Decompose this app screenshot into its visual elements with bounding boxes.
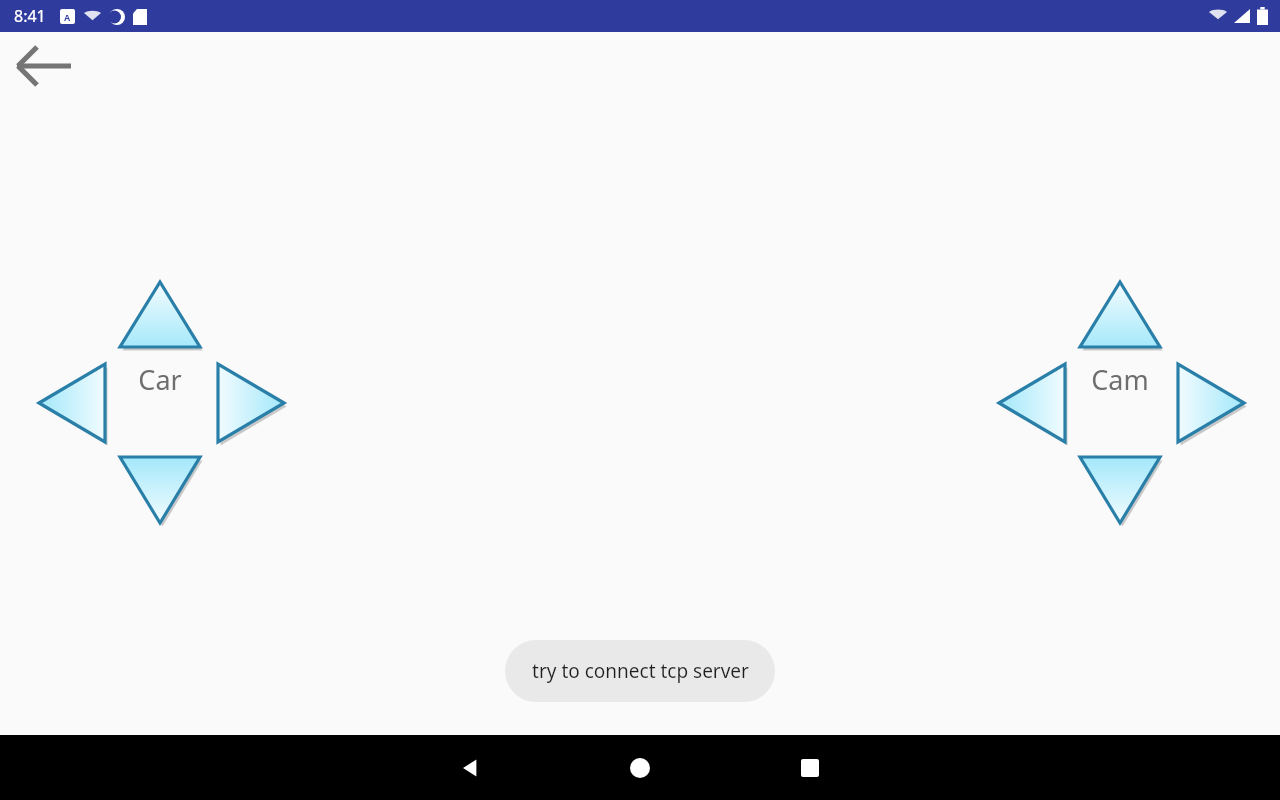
button[interactable]: Navigate up [2, 38, 86, 94]
button[interactable]: Car down [115, 451, 205, 529]
button[interactable]: Recent apps [786, 744, 834, 792]
button[interactable]: Home [616, 744, 664, 792]
staticText: Cam [1091, 361, 1149, 398]
button[interactable]: Cam right [1170, 359, 1250, 447]
button[interactable]: Car left [33, 359, 113, 447]
staticText: try to connect tcp server [532, 658, 749, 684]
button[interactable]: Cam down [1075, 451, 1165, 529]
staticText: 8:41 [14, 5, 46, 27]
staticText: A [64, 11, 71, 23]
button[interactable]: Cam up [1075, 277, 1165, 355]
button[interactable]: Back [446, 744, 494, 792]
button[interactable]: Car right [210, 359, 290, 447]
button[interactable]: Cam left [993, 359, 1073, 447]
staticText: Car [138, 361, 182, 398]
button[interactable]: Car up [115, 277, 205, 355]
button[interactable]: try to connect tcp server [505, 640, 775, 702]
